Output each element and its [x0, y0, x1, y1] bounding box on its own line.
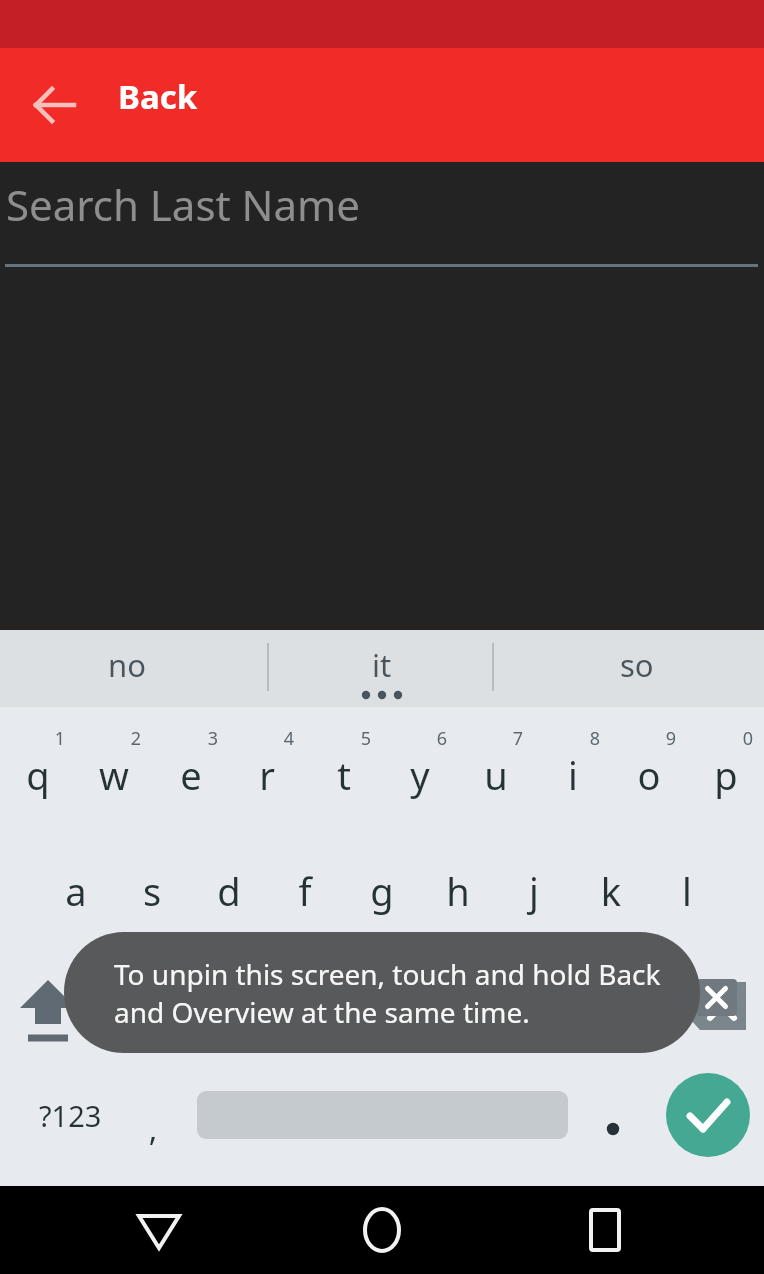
button[interactable]: , — [93, 1107, 213, 1151]
staticText: b — [398, 981, 518, 1033]
button[interactable]: 8 — [535, 726, 655, 751]
button[interactable]: y — [360, 749, 480, 801]
staticText: r — [207, 749, 327, 801]
staticText: q — [0, 749, 98, 801]
button[interactable]: Home — [333, 1186, 431, 1274]
staticText: 6 — [382, 726, 502, 751]
button[interactable]: h — [398, 865, 518, 917]
button[interactable]: Search Last Name — [6, 176, 764, 266]
button[interactable]: e — [131, 749, 251, 801]
button[interactable]: m — [550, 981, 670, 1033]
staticText: 3 — [153, 726, 273, 751]
button[interactable]: 4 — [229, 726, 349, 751]
staticText: no — [108, 644, 146, 686]
button[interactable]: Close — [696, 979, 737, 1016]
button[interactable]: 5 — [306, 726, 426, 751]
button[interactable]: q — [0, 749, 98, 801]
staticText: f — [245, 865, 365, 917]
button[interactable]: i — [513, 749, 633, 801]
button[interactable]: 2 — [76, 726, 196, 751]
staticText: 4 — [229, 726, 349, 751]
button[interactable]: b — [398, 981, 518, 1033]
staticText: so — [620, 644, 654, 686]
staticText: t — [284, 749, 404, 801]
button[interactable]: u — [436, 749, 556, 801]
button[interactable]: Overview — [556, 1186, 654, 1274]
staticText: l — [627, 865, 747, 917]
button[interactable]: r — [207, 749, 327, 801]
button[interactable]: 0 — [688, 726, 764, 751]
button[interactable]: 9 — [611, 726, 731, 751]
staticText: o — [589, 749, 709, 801]
button[interactable]: x — [168, 981, 288, 1033]
staticText: v — [321, 981, 441, 1033]
staticText: c — [245, 981, 365, 1033]
staticText: y — [360, 749, 480, 801]
staticText: u — [436, 749, 556, 801]
staticText: x — [168, 981, 288, 1033]
button[interactable]: w — [54, 749, 174, 801]
button[interactable]: it — [254, 630, 509, 707]
button[interactable]: so — [509, 630, 764, 707]
staticText: j — [474, 865, 594, 917]
staticText: s — [92, 865, 212, 917]
staticText: g — [322, 865, 442, 917]
button[interactable]: Shift — [6, 960, 90, 1052]
staticText: it — [372, 644, 392, 686]
staticText: m — [550, 981, 670, 1033]
button[interactable]: a — [16, 865, 136, 917]
staticText: d — [169, 865, 289, 917]
staticText: , — [93, 1107, 213, 1151]
button[interactable]: z — [92, 981, 212, 1033]
button[interactable]: s — [92, 865, 212, 917]
staticText: 5 — [306, 726, 426, 751]
button[interactable]: d — [169, 865, 289, 917]
staticText: 0 — [688, 726, 764, 751]
staticText: Back — [118, 74, 198, 119]
button[interactable]: To unpin this screen, touch and hold Bac… — [64, 932, 700, 1053]
button[interactable]: 7 — [458, 726, 578, 751]
button[interactable]: Back — [110, 1186, 208, 1274]
staticText: Search Last Name — [6, 176, 361, 233]
button[interactable]: ?123 — [0, 1075, 140, 1155]
staticText: To unpin this screen, touch and hold Bac… — [114, 955, 661, 1031]
button[interactable]: 1 — [0, 726, 120, 751]
button[interactable]: l — [627, 865, 747, 917]
button[interactable]: j — [474, 865, 594, 917]
button[interactable]: c — [245, 981, 365, 1033]
button[interactable]: g — [322, 865, 442, 917]
button[interactable]: f — [245, 865, 365, 917]
staticText: k — [551, 865, 671, 917]
staticText: 8 — [535, 726, 655, 751]
button[interactable]: Period — [585, 1085, 643, 1147]
button[interactable]: t — [284, 749, 404, 801]
button[interactable]: no — [0, 630, 254, 707]
staticText: h — [398, 865, 518, 917]
staticText: ?123 — [39, 1096, 102, 1135]
staticText: z — [92, 981, 212, 1033]
button[interactable]: k — [551, 865, 671, 917]
staticText: w — [54, 749, 174, 801]
staticText: p — [666, 749, 764, 801]
button[interactable]: 3 — [153, 726, 273, 751]
staticText: 1 — [0, 726, 120, 751]
button[interactable]: n — [474, 981, 594, 1033]
button[interactable]: Back — [18, 72, 92, 138]
staticText: i — [513, 749, 633, 801]
staticText: 9 — [611, 726, 731, 751]
button[interactable]: Enter — [666, 1073, 750, 1157]
staticText: n — [474, 981, 594, 1033]
button[interactable]: Backspace — [668, 962, 756, 1050]
button[interactable]: Back — [118, 74, 198, 119]
staticText: a — [16, 865, 136, 917]
staticText: 7 — [458, 726, 578, 751]
button[interactable]: o — [589, 749, 709, 801]
button[interactable]: 6 — [382, 726, 502, 751]
button[interactable]: v — [321, 981, 441, 1033]
button[interactable]: p — [666, 749, 764, 801]
staticText: e — [131, 749, 251, 801]
staticText: 2 — [76, 726, 196, 751]
